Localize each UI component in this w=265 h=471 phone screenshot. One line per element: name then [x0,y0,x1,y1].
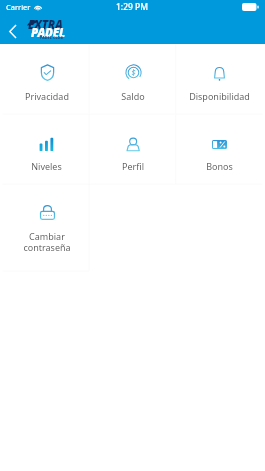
staticText: PADEL CLUB [40,35,63,40]
staticText: Privacidad [25,90,69,102]
staticText: Saldo [121,90,145,102]
staticText: PADEL [31,25,65,41]
button[interactable]: Saldo [90,44,176,114]
staticText: Disponibilidad [189,90,250,102]
staticText: Bonos [206,160,233,172]
staticText: Cambiar contraseña [23,230,71,254]
button[interactable]: Disponibilidad [176,44,262,114]
button[interactable]: Perfil [90,114,176,184]
staticText: Niveles [31,160,62,172]
button[interactable]: Back [0,18,26,44]
button[interactable]: Niveles [3,114,90,184]
button[interactable]: Privacidad [3,44,90,114]
staticText: Perfil [122,160,144,172]
staticText: EXTRA [28,17,63,33]
button[interactable]: Bonos [176,114,262,184]
button[interactable]: Cambiar contraseña [3,184,90,271]
staticText: 1:29 PM [116,1,149,13]
staticText: Carrier [6,2,31,12]
